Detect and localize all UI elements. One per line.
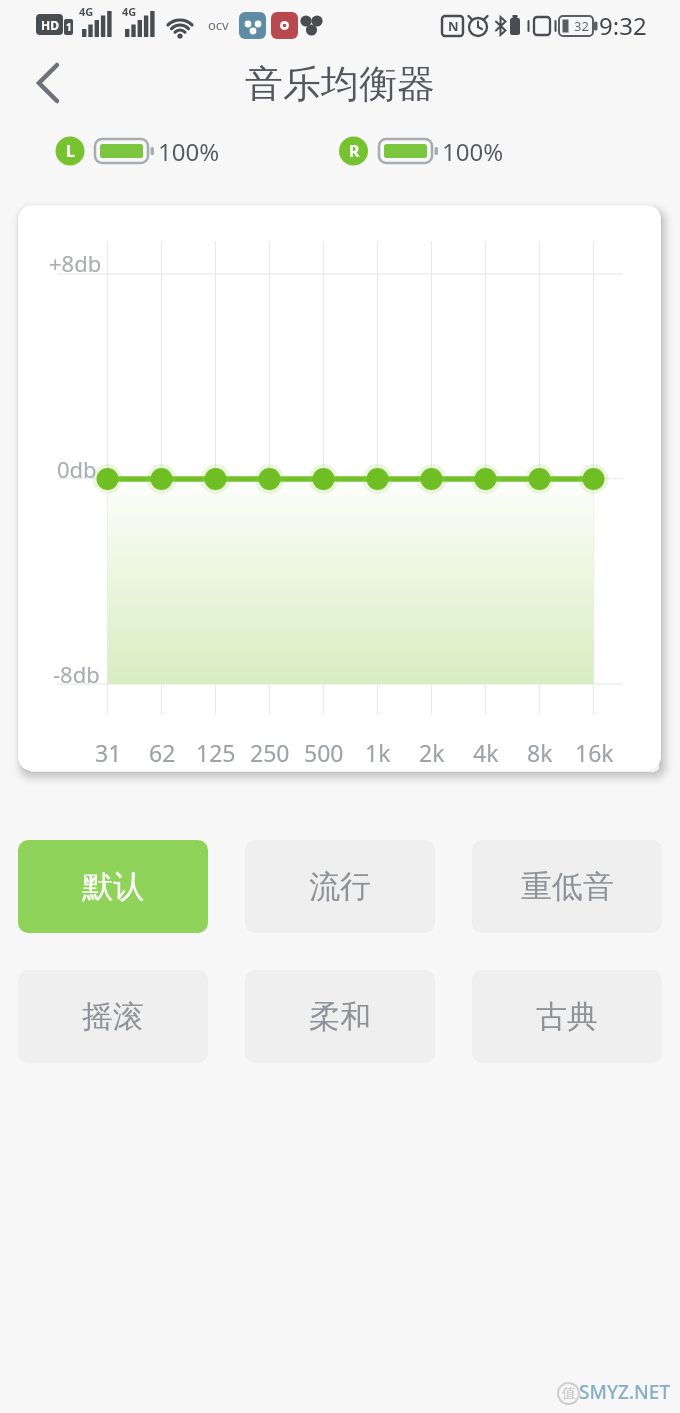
staticText: 流行 (309, 867, 371, 906)
staticText: 1 (66, 20, 72, 34)
button[interactable]: 古典 (472, 970, 662, 1063)
staticText: 31 (95, 737, 122, 768)
button[interactable]: 重低音 (472, 840, 662, 933)
staticText: N (448, 17, 459, 35)
staticText: 16k (575, 737, 614, 768)
staticText: 柔和 (309, 997, 371, 1036)
staticText: R (349, 140, 360, 162)
staticText: 音乐均衡器 (245, 60, 435, 108)
staticText: 32 (574, 17, 589, 35)
staticText: 4G (79, 4, 94, 19)
staticText: 250 (250, 737, 290, 768)
staticText: L (66, 140, 75, 162)
staticText: 摇滚 (82, 997, 144, 1036)
staticText: -8db (53, 659, 100, 689)
staticText: 默认 (82, 867, 144, 906)
staticText: SMYZ.NET (579, 1379, 671, 1405)
button[interactable]: 摇滚 (18, 970, 208, 1063)
staticText: 古典 (536, 997, 598, 1036)
staticText: 8k (527, 737, 553, 768)
staticText: 100% (442, 135, 504, 168)
staticText: 125 (196, 737, 236, 768)
staticText: 62 (149, 737, 176, 768)
staticText: 100% (158, 135, 220, 168)
staticText: 2k (419, 737, 445, 768)
staticText: +8db (49, 248, 102, 278)
button[interactable]: 流行 (245, 840, 435, 933)
staticText: 0db (57, 454, 97, 484)
staticText: 500 (304, 737, 344, 768)
button[interactable] (24, 58, 72, 106)
staticText: 值 (562, 1385, 576, 1403)
staticText: 1k (365, 737, 391, 768)
staticText: 4k (473, 737, 499, 768)
staticText: HD (41, 17, 59, 33)
staticText: 重低音 (521, 867, 614, 906)
staticText: ocv (208, 16, 229, 34)
button[interactable]: 默认 (18, 840, 208, 933)
button[interactable]: 柔和 (245, 970, 435, 1063)
staticText: 9:32 (599, 9, 647, 42)
staticText: 4G (122, 4, 137, 19)
